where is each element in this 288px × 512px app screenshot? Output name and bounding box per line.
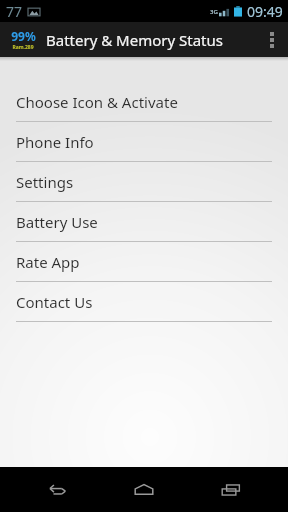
button[interactable]: Choose Icon & Activate bbox=[0, 82, 288, 121]
staticText: 77 bbox=[6, 2, 23, 21]
button[interactable]: Settings bbox=[0, 162, 288, 201]
staticText: Settings bbox=[16, 172, 74, 192]
staticText: Contact Us bbox=[16, 292, 93, 312]
staticText: 09:49 bbox=[247, 2, 283, 21]
button[interactable]: Rate App bbox=[0, 242, 288, 281]
staticText: 3G bbox=[210, 8, 218, 16]
button[interactable]: More options bbox=[256, 22, 288, 57]
staticText: Rate App bbox=[16, 252, 80, 272]
staticText: Battery Use bbox=[16, 212, 98, 232]
button[interactable]: Back bbox=[27, 467, 87, 512]
staticText: Phone Info bbox=[16, 132, 94, 152]
staticText: 99% bbox=[11, 28, 36, 44]
staticText: Choose Icon & Activate bbox=[16, 92, 178, 112]
staticText: Ram.289 bbox=[12, 44, 34, 51]
button[interactable]: Phone Info bbox=[0, 122, 288, 161]
button[interactable]: Home bbox=[114, 467, 174, 512]
staticText: Battery & Memory Status bbox=[46, 30, 223, 50]
button[interactable]: Recent apps bbox=[201, 467, 261, 512]
button[interactable]: Contact Us bbox=[0, 282, 288, 321]
button[interactable]: Battery Use bbox=[0, 202, 288, 241]
